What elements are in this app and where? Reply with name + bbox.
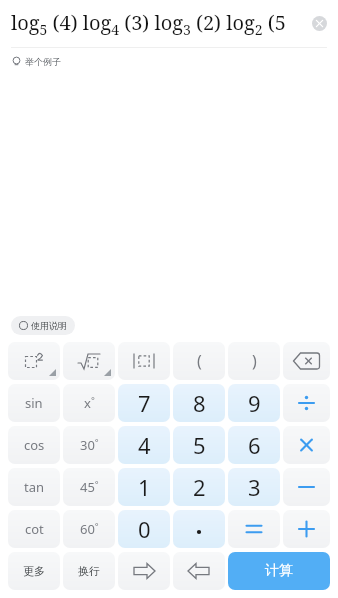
button[interactable]: Move left <box>118 552 170 590</box>
button[interactable]: cot <box>8 510 60 548</box>
button[interactable]: 更多 <box>8 552 60 590</box>
staticText: 60° <box>80 520 99 538</box>
button[interactable]: 举个例子 <box>11 48 338 74</box>
staticText: 使用说明 <box>31 320 67 331</box>
staticText: tan <box>24 478 45 496</box>
button[interactable]: 4 <box>118 426 170 464</box>
button[interactable]: Square root <box>63 342 115 380</box>
button[interactable] <box>173 510 225 548</box>
staticText: 7 <box>138 388 151 418</box>
button[interactable]: Absolute value <box>118 342 170 380</box>
button[interactable]: ( <box>173 342 225 380</box>
staticText: ) <box>252 350 257 372</box>
staticText: 30° <box>80 436 99 454</box>
staticText: 8 <box>193 388 206 418</box>
staticText: 6 <box>248 430 261 460</box>
button[interactable]: 2 <box>173 468 225 506</box>
button[interactable] <box>283 510 330 548</box>
button[interactable]: x° <box>63 384 115 422</box>
staticText: 3 <box>248 472 261 502</box>
button[interactable]: Square <box>8 342 60 380</box>
staticText: 更多 <box>23 564 45 578</box>
button[interactable] <box>283 426 330 464</box>
button[interactable]: 60° <box>63 510 115 548</box>
staticText: 45° <box>80 478 99 496</box>
button[interactable]: Backspace <box>283 342 330 380</box>
button[interactable] <box>283 468 330 506</box>
button[interactable]: 使用说明 <box>19 320 67 331</box>
button[interactable]: 8 <box>173 384 225 422</box>
staticText: cos <box>24 436 45 454</box>
staticText: 9 <box>248 388 261 418</box>
staticText: 换行 <box>78 564 100 578</box>
button[interactable]: Clear <box>312 16 327 31</box>
staticText: ( <box>197 350 202 372</box>
staticText: 0 <box>138 514 151 544</box>
staticText: 1 <box>138 472 151 502</box>
button[interactable]: tan <box>8 468 60 506</box>
button[interactable]: 5 <box>173 426 225 464</box>
staticText: cot <box>25 520 44 538</box>
button[interactable]: sin <box>8 384 60 422</box>
staticText: 4 <box>138 430 151 460</box>
button[interactable] <box>228 510 280 548</box>
staticText: log5 (4) log4 (3) log3 (2) log2 (5 <box>11 9 286 39</box>
staticText: 2 <box>193 472 206 502</box>
button[interactable]: cos <box>8 426 60 464</box>
button[interactable]: 3 <box>228 468 280 506</box>
button[interactable]: ) <box>228 342 280 380</box>
button[interactable]: 1 <box>118 468 170 506</box>
button[interactable]: 9 <box>228 384 280 422</box>
button[interactable]: 30° <box>63 426 115 464</box>
button[interactable]: 7 <box>118 384 170 422</box>
button[interactable]: 45° <box>63 468 115 506</box>
button[interactable]: 0 <box>118 510 170 548</box>
button[interactable]: 6 <box>228 426 280 464</box>
staticText: 举个例子 <box>25 56 61 67</box>
staticText: sin <box>25 394 43 412</box>
staticText: 计算 <box>265 562 293 580</box>
button[interactable]: 计算 <box>228 552 330 590</box>
staticText: x° <box>84 394 95 412</box>
button[interactable]: Move right <box>173 552 225 590</box>
button[interactable] <box>283 384 330 422</box>
button[interactable]: 换行 <box>63 552 115 590</box>
staticText: 5 <box>193 430 206 460</box>
